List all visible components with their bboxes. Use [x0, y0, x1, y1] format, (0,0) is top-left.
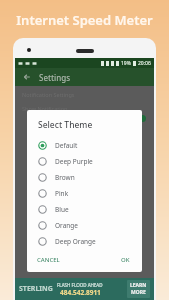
button[interactable]: OK: [118, 254, 133, 266]
button[interactable]: LEARN: [127, 280, 150, 298]
button[interactable]: Deep Orange: [27, 233, 142, 249]
button[interactable]: Toggle notification: [139, 115, 146, 122]
staticText: Pink: [55, 189, 69, 198]
staticText: Internet Speed Meter: [16, 11, 153, 29]
staticText: 19%: [121, 60, 131, 67]
staticText: Blue: [55, 205, 69, 214]
staticText: LEARN: [130, 282, 147, 289]
button[interactable]: Back: [21, 71, 33, 83]
staticText: MORE: [131, 289, 146, 296]
button[interactable]: CANCEL: [36, 254, 61, 266]
staticText: STERLING: [19, 284, 53, 294]
button[interactable]: Brown: [27, 169, 142, 185]
button[interactable]: Orange: [27, 217, 142, 233]
staticText: Select Theme: [38, 119, 93, 131]
staticText: Notification Settings: [22, 91, 75, 98]
staticText: Deep Purple: [55, 157, 93, 166]
button[interactable]: Blue: [27, 201, 142, 217]
staticText: Default: [55, 141, 78, 150]
staticText: Orange: [55, 221, 78, 230]
staticText: Deep Orange: [55, 237, 96, 246]
button[interactable]: Default: [27, 137, 142, 153]
staticText: Brown: [55, 173, 75, 182]
staticText: CANCEL: [37, 256, 60, 264]
staticText: FLASH FLOOD AHEAD: [57, 282, 103, 288]
staticText: 484.542.8911: [60, 288, 101, 297]
staticText: OK: [121, 256, 130, 264]
staticText: 20:06: [138, 60, 151, 67]
staticText: Show Notification: [22, 105, 68, 112]
button[interactable]: Deep Purple: [27, 153, 142, 169]
staticText: Settings: [39, 72, 71, 83]
button[interactable]: STERLING: [15, 278, 154, 300]
button[interactable]: Pink: [27, 185, 142, 201]
